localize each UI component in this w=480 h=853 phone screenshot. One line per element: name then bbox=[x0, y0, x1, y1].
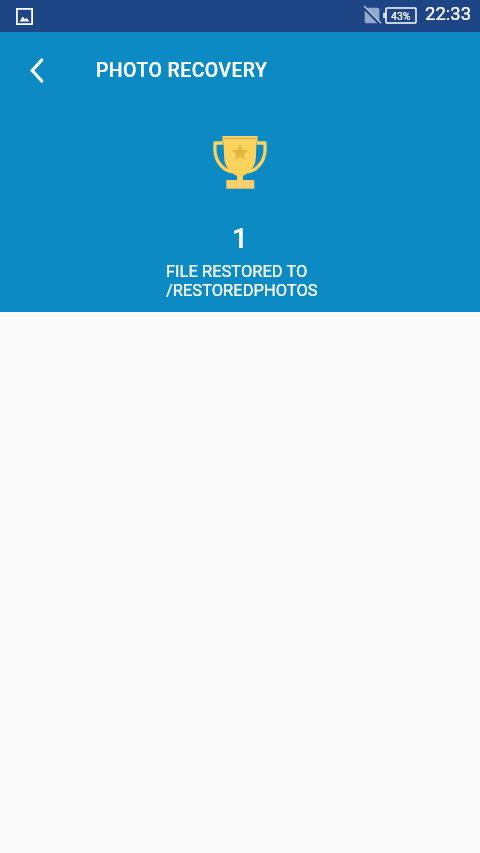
staticText: FILE RESTORED TO /RESTOREDPHOTOS bbox=[166, 262, 318, 300]
staticText: 1 bbox=[232, 222, 248, 255]
button[interactable]: Back bbox=[13, 46, 61, 94]
staticText: 22:33 bbox=[425, 3, 472, 25]
staticText: PHOTO RECOVERY bbox=[96, 59, 268, 82]
staticText: 43% bbox=[391, 10, 411, 22]
